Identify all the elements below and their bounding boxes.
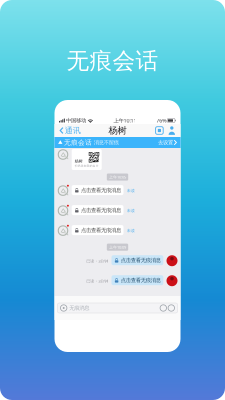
staticText: 已读・3分钟 [86,278,108,284]
staticText: 上午10:11 [113,117,136,124]
staticText: 点击查看无痕消息 [121,277,161,283]
staticText: 消息不留痕 [94,139,119,146]
staticText: 无痕消息 [69,305,89,311]
staticText: 去设置 [158,139,173,146]
button[interactable]: 点击查看无痕消息 [72,185,123,195]
staticText: 已读・3分钟 [86,258,108,264]
staticText: 中国移动 [66,117,86,124]
button[interactable]: Emoji [159,305,167,311]
staticText: 杨树 [108,125,126,136]
button[interactable]: 点击查看无痕消息 [72,225,123,235]
button[interactable]: More [167,305,175,311]
button[interactable]: 点击查看无痕消息 [111,275,163,285]
staticText: 无痕会话 [66,47,158,75]
staticText: 通讯 [65,126,81,135]
button[interactable]: 点击查看无痕消息 [111,255,163,265]
button[interactable]: Back to 通讯 [57,124,83,137]
staticText: 杨树 [75,159,83,164]
staticText: 扫码添加我的名片 [75,164,99,167]
button[interactable]: Voice input [60,305,68,311]
button[interactable]: 点击查看无痕消息 [72,205,123,215]
staticText: 点击查看无痕消息 [81,207,121,213]
staticText: 点击查看无痕消息 [81,187,121,193]
button[interactable]: Contact info [166,124,178,137]
staticText: 76% [156,117,166,124]
staticText: 点击查看无痕消息 [121,257,161,263]
staticText: 无痕会话 [64,138,92,147]
staticText: 未读 [127,208,135,213]
staticText: 上午10:05 [109,174,126,180]
staticText: 点击查看无痕消息 [81,227,121,233]
staticText: 未读 [127,188,135,193]
staticText: 上午10:09 [109,244,126,250]
button[interactable]: 杨树 [72,149,102,170]
button[interactable]: Notes [153,124,166,137]
staticText: 未读 [127,228,135,233]
button[interactable]: 无痕会话 [54,137,180,148]
